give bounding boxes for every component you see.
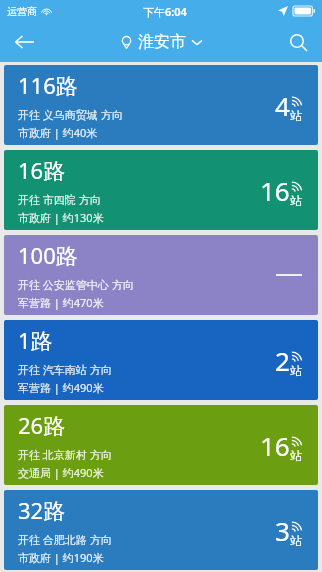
staticText: 开往 义乌商贸城 方向 [18,107,123,122]
staticText: 军营路 | 约490米 [18,380,104,395]
button[interactable]: 32路 [4,490,318,570]
staticText: 运营商 [7,5,37,18]
staticText: 站 [290,363,302,378]
staticText: 开往 公安监管中心 方向 [18,277,134,292]
staticText: 16 [260,428,290,463]
staticText: 100路 [18,240,78,270]
staticText: 26路 [18,410,66,440]
button[interactable]: Back [0,22,48,62]
button[interactable]: Search [274,22,322,62]
staticText: 32路 [18,495,66,525]
staticText: 市政府 | 约130米 [18,210,104,225]
staticText: 市政府 | 约190米 [18,550,104,565]
staticText: 市政府 | 约40米 [18,125,98,140]
staticText: 3 [275,513,290,548]
staticText: 军营路 | 约470米 [18,295,104,310]
staticText: 开往 市四院 方向 [18,192,101,207]
staticText: 站 [290,448,302,463]
staticText: 开往 北京新村 方向 [18,447,112,462]
staticText: 开往 合肥北路 方向 [18,532,112,547]
staticText: 16路 [18,155,66,185]
button[interactable]: 1路 [4,320,318,400]
staticText: 4 [275,88,290,123]
staticText: 16 [260,173,290,208]
staticText: 2 [275,343,290,378]
staticText: 站 [290,193,302,208]
staticText: 淮安市 [138,32,186,52]
staticText: 1路 [18,325,53,355]
staticText: 下午6:04 [143,4,187,19]
staticText: 开往 汽车南站 方向 [18,362,112,377]
button[interactable]: 26路 [4,405,318,485]
staticText: 站 [290,108,302,123]
button[interactable]: 16路 [4,150,318,230]
staticText: 交通局 | 约490米 [18,465,104,480]
button[interactable]: 100路 [4,235,318,315]
button[interactable]: 116路 [4,65,318,145]
button[interactable]: 淮安市 [120,32,202,52]
staticText: 116路 [18,70,78,100]
staticText: 站 [290,533,302,548]
